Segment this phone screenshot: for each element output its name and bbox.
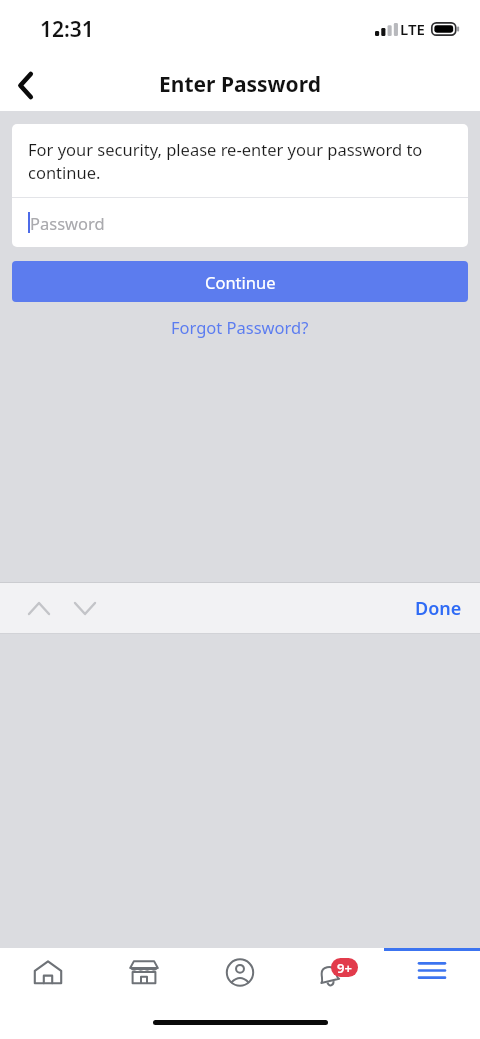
button[interactable]: Shop [96, 948, 192, 1010]
staticText: LTE [400, 19, 425, 39]
staticText: Done [415, 596, 462, 621]
staticText: Forgot Password? [171, 316, 309, 338]
button[interactable]: Forgot Password? [161, 313, 319, 341]
button[interactable]: Previous field [18, 587, 60, 629]
staticText: Password [30, 212, 105, 234]
button[interactable]: Password [12, 198, 468, 247]
button[interactable]: Home [0, 948, 96, 1010]
button[interactable]: Back [0, 59, 52, 111]
button[interactable]: Next field [64, 587, 106, 629]
staticText: Enter Password [159, 70, 321, 99]
staticText: For your security, please re-enter your … [28, 138, 452, 184]
staticText: Continue [205, 271, 276, 293]
button[interactable]: Notifications [288, 948, 384, 1010]
button[interactable]: Done [397, 588, 480, 629]
button[interactable]: Account [192, 948, 288, 1010]
staticText: 9+ [337, 959, 352, 977]
staticText: 12:31 [40, 15, 94, 44]
button[interactable]: Continue [12, 261, 468, 302]
button[interactable]: Menu [384, 948, 480, 1010]
